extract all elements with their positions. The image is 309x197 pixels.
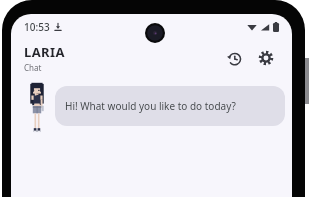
- button[interactable]: Hi! What would you like to do today?: [55, 86, 285, 126]
- staticText: LARIA: [24, 43, 65, 61]
- staticText: 10:53: [24, 20, 50, 34]
- button[interactable]: Settings: [251, 43, 281, 73]
- button[interactable]: History: [219, 43, 249, 73]
- staticText: Chat: [24, 62, 42, 73]
- staticText: Hi! What would you like to do today?: [65, 99, 236, 113]
